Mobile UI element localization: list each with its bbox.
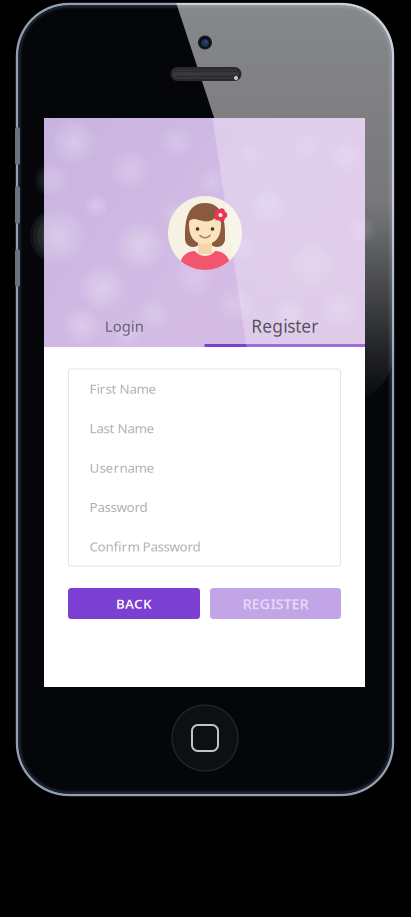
staticText: Username [89,459,154,476]
button[interactable]: Login [44,305,204,347]
staticText: First Name [89,380,156,397]
staticText: Password [89,498,147,516]
staticText: REGISTER [242,594,308,613]
button[interactable]: Register [204,305,365,347]
button[interactable]: REGISTER [210,588,341,619]
staticText: BACK [116,595,152,612]
staticText: Confirm Password [89,537,200,555]
staticText: Login [105,316,144,336]
staticText: Last Name [89,419,154,437]
staticText: Register [251,314,318,337]
button[interactable]: BACK [68,588,200,619]
